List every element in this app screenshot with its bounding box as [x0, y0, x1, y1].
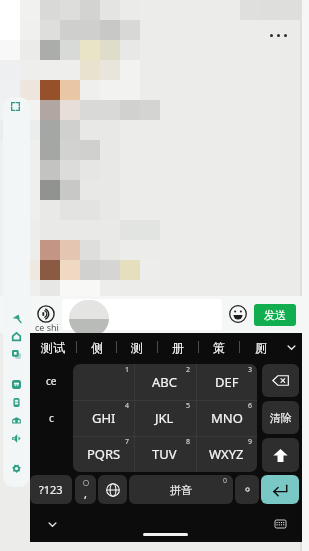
staticText: ce	[46, 374, 57, 388]
button[interactable]: Note	[3, 393, 30, 411]
staticText: 1	[125, 365, 130, 375]
staticText: PQRS	[87, 445, 121, 463]
button[interactable]: 侧	[77, 333, 116, 361]
button[interactable]: ,	[75, 475, 96, 504]
staticText: 测	[131, 340, 143, 355]
button[interactable]: 策	[199, 333, 239, 361]
button[interactable]: ?123	[30, 475, 72, 504]
button[interactable]: 清除	[262, 401, 299, 434]
button[interactable]: Shift	[262, 438, 299, 472]
staticText: 拼音	[170, 483, 192, 497]
button[interactable]: 测试	[30, 333, 76, 361]
button[interactable]: Emoji	[229, 305, 247, 323]
button[interactable]: Screenshot	[3, 375, 30, 393]
button[interactable]: Keyboard layout options	[267, 513, 293, 535]
button[interactable]: More options	[270, 28, 292, 42]
button[interactable]: Backspace	[262, 364, 299, 397]
button[interactable]	[235, 475, 259, 504]
staticText: 8	[186, 437, 191, 447]
staticText: ?123	[39, 482, 63, 497]
button[interactable]: 发送	[254, 304, 296, 326]
button[interactable]: Voice input	[37, 305, 55, 323]
button[interactable]: MNO	[196, 400, 257, 436]
staticText: c	[49, 411, 54, 425]
staticText: ,	[84, 486, 87, 501]
staticText: JKL	[155, 409, 174, 427]
button[interactable]: DEF	[196, 364, 257, 400]
button[interactable]: Switch input language	[98, 475, 127, 504]
staticText: 清除	[270, 411, 292, 425]
staticText: 侧	[91, 340, 103, 355]
button[interactable]: More candidates	[281, 333, 302, 361]
button[interactable]: GHI	[73, 400, 134, 436]
button[interactable]: 册	[158, 333, 198, 361]
button[interactable]: c	[30, 401, 72, 434]
button[interactable]	[62, 299, 222, 330]
button[interactable]: Recent apps	[3, 345, 30, 363]
staticText: 册	[172, 340, 184, 355]
staticText: 6	[248, 401, 253, 411]
button[interactable]: 1	[73, 364, 134, 400]
button[interactable]: Camera	[3, 411, 30, 429]
button[interactable]: Settings	[3, 459, 30, 477]
staticText: 9	[248, 437, 253, 447]
staticText: 厕	[255, 340, 267, 355]
button[interactable]: ce	[30, 364, 72, 397]
button[interactable]: ABC	[134, 364, 195, 400]
staticText: DEF	[215, 373, 239, 391]
button[interactable]: Home	[3, 327, 30, 345]
button[interactable]: Pin	[3, 309, 30, 327]
staticText: GHI	[92, 409, 116, 427]
button[interactable]: Volume	[3, 429, 30, 447]
staticText: ce shi	[35, 321, 59, 333]
button[interactable]: Expand window	[11, 102, 20, 111]
staticText: 3	[248, 365, 253, 375]
button[interactable]: JKL	[134, 400, 195, 436]
button[interactable]: TUV	[134, 436, 195, 472]
button[interactable]: WXYZ	[196, 436, 257, 472]
button[interactable]: PQRS	[73, 436, 134, 472]
button[interactable]: Hide keyboard	[39, 513, 65, 535]
staticText: WXYZ	[209, 445, 244, 463]
staticText: 4	[125, 401, 130, 411]
staticText: TUV	[152, 445, 177, 463]
button[interactable]: Enter	[261, 475, 299, 504]
staticText: 策	[213, 340, 225, 355]
button[interactable]: 厕	[240, 333, 281, 361]
staticText: 0	[223, 476, 228, 486]
staticText: 测试	[41, 340, 65, 355]
button[interactable]: 拼音	[129, 475, 233, 504]
staticText: 发送	[264, 308, 286, 322]
staticText: 7	[125, 437, 130, 447]
staticText: ABC	[152, 373, 177, 391]
staticText: MNO	[211, 409, 243, 427]
staticText: 5	[186, 401, 191, 411]
button[interactable]: 测	[117, 333, 157, 361]
staticText: 2	[186, 365, 191, 375]
